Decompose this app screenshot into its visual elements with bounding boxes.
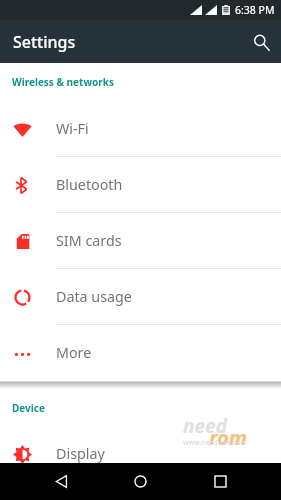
staticText: Settings xyxy=(13,31,76,53)
staticText: need xyxy=(183,413,227,439)
button[interactable]: SIM cards xyxy=(0,213,281,269)
staticText: Bluetooth xyxy=(56,175,123,194)
button[interactable]: Search xyxy=(244,25,278,59)
staticText: SIM cards xyxy=(56,231,122,250)
button[interactable]: More xyxy=(0,325,281,381)
button[interactable]: Home xyxy=(122,463,159,500)
staticText: rom xyxy=(209,424,247,451)
button[interactable]: Display xyxy=(0,426,281,482)
staticText: More xyxy=(56,343,92,362)
button[interactable]: Bluetooth xyxy=(0,157,281,213)
staticText: Device xyxy=(12,401,45,415)
staticText: Wi-Fi xyxy=(56,119,89,138)
button[interactable]: Wi-Fi xyxy=(0,101,281,157)
staticText: www.needrom.com xyxy=(183,438,248,448)
button[interactable]: Back xyxy=(43,463,80,500)
staticText: Wireless & networks xyxy=(12,75,114,89)
staticText: Display xyxy=(56,444,105,463)
staticText: Data usage xyxy=(56,287,132,306)
button[interactable]: Data usage xyxy=(0,269,281,325)
staticText: 6:38 PM xyxy=(235,3,275,17)
button[interactable]: Recents xyxy=(202,463,239,500)
